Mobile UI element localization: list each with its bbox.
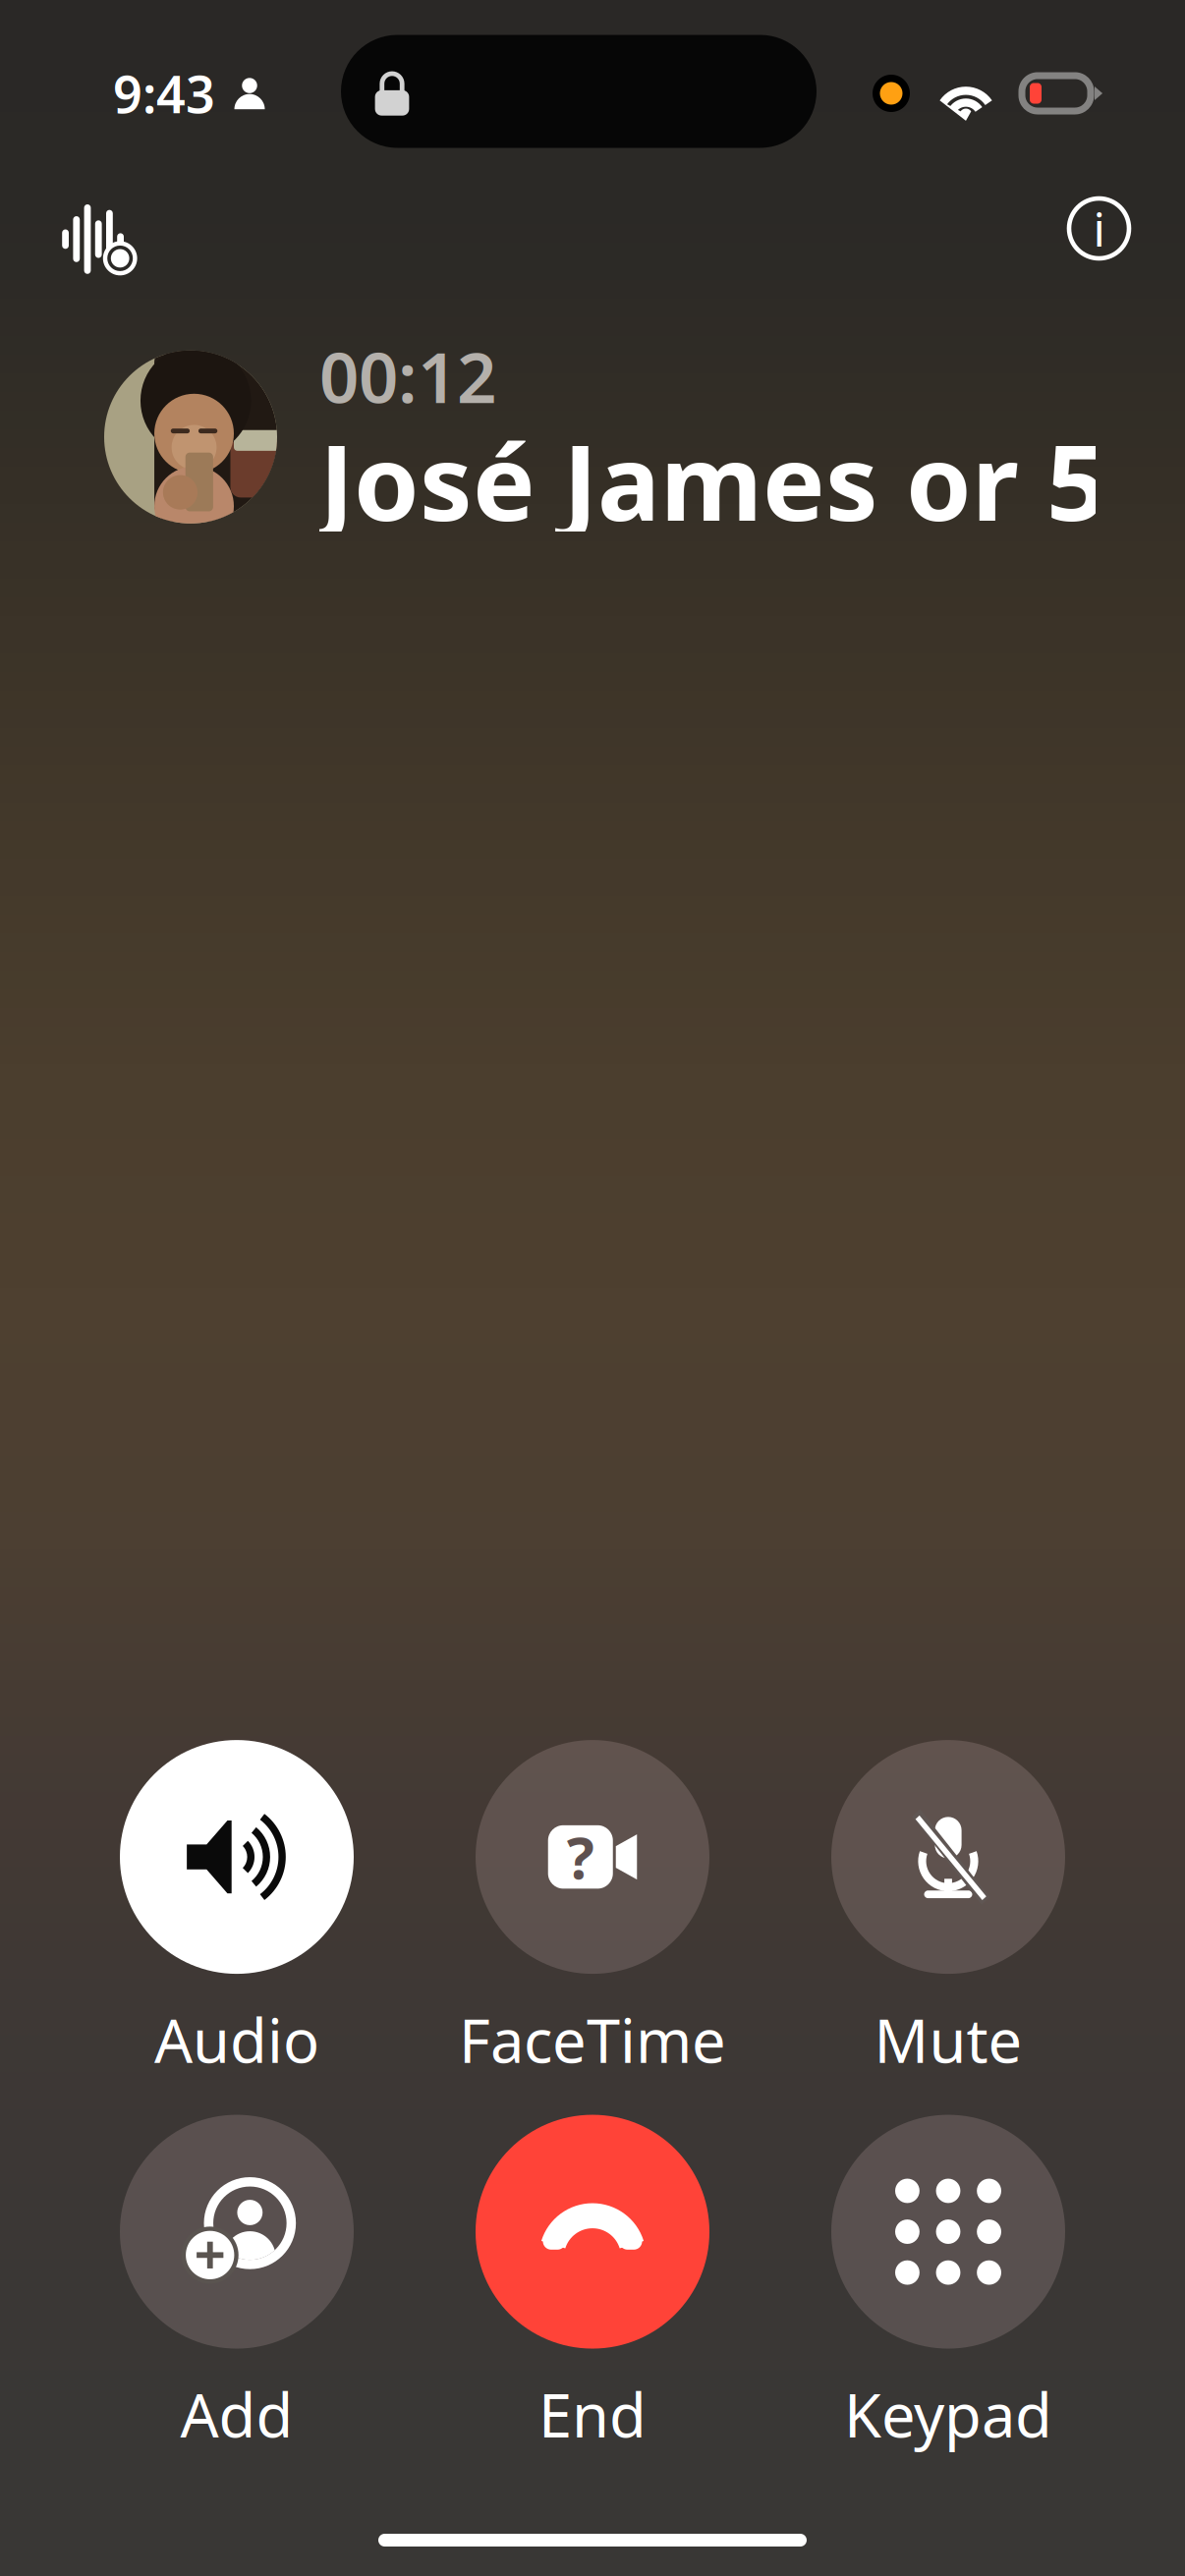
staticText: Add bbox=[180, 2374, 293, 2454]
button[interactable]: Add bbox=[89, 2115, 384, 2454]
staticText: 00:12 bbox=[319, 330, 496, 422]
staticText: FaceTime bbox=[459, 1999, 726, 2079]
button[interactable]: Audio bbox=[89, 1740, 384, 2079]
staticText: Mute bbox=[874, 1999, 1022, 2079]
staticText: i bbox=[1093, 197, 1105, 260]
button[interactable]: Call info bbox=[1069, 198, 1129, 258]
staticText: Keypad bbox=[844, 2374, 1052, 2454]
button[interactable]: Live audio bbox=[36, 204, 115, 274]
staticText: ? bbox=[567, 1819, 594, 1895]
button[interactable]: Keypad bbox=[801, 2115, 1096, 2454]
staticText: 9:43 bbox=[113, 59, 215, 127]
button[interactable]: Mute bbox=[801, 1740, 1096, 2079]
button[interactable]: ? bbox=[445, 1740, 740, 2079]
staticText: End bbox=[538, 2374, 647, 2454]
staticText: Audio bbox=[154, 1999, 319, 2079]
button[interactable]: End bbox=[445, 2115, 740, 2454]
staticText: José James or 5 bbox=[319, 410, 1106, 550]
